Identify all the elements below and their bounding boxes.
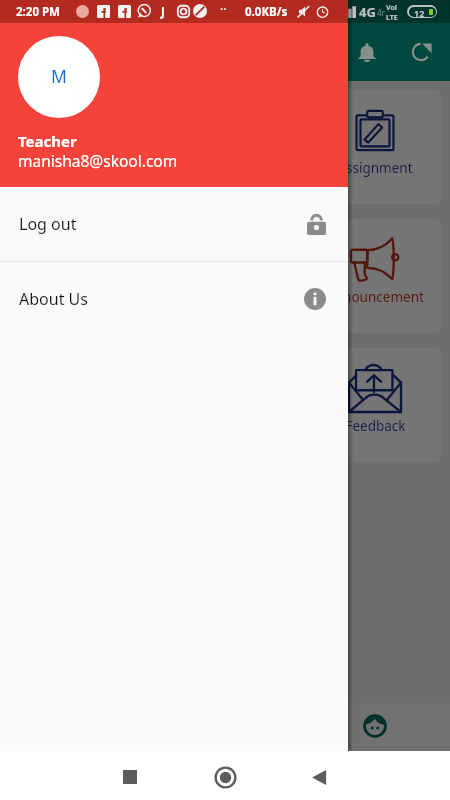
button[interactable]: Announcement bbox=[309, 219, 441, 333]
button[interactable]: Homework bbox=[159, 90, 291, 204]
button[interactable]: Attendance bbox=[9, 90, 141, 204]
button[interactable]: Log out bbox=[0, 187, 348, 261]
staticText: J bbox=[161, 4, 165, 20]
button[interactable]: Assignment bbox=[309, 90, 441, 204]
button[interactable]: Feedback bbox=[309, 348, 441, 462]
button[interactable]: Profile bbox=[363, 714, 387, 738]
staticText: 4G bbox=[359, 3, 376, 21]
staticText: Attendance bbox=[39, 159, 112, 177]
staticText: ·· bbox=[220, 1, 227, 17]
staticText: Teacher bbox=[18, 131, 77, 151]
button[interactable]: Back bbox=[294, 753, 342, 800]
button[interactable]: Time Table bbox=[9, 219, 141, 333]
staticText: 2:20 PM bbox=[16, 4, 60, 20]
staticText: 0.0KB/s bbox=[245, 4, 288, 20]
button[interactable]: Recents bbox=[106, 753, 154, 800]
button[interactable]: About Us bbox=[0, 262, 348, 336]
button[interactable]: Home bbox=[201, 753, 249, 800]
staticText: Time Table bbox=[41, 288, 110, 306]
staticText: Vol bbox=[386, 3, 397, 13]
staticText: M bbox=[51, 64, 67, 88]
staticText: Log out bbox=[19, 213, 77, 235]
button[interactable]: Refresh bbox=[398, 29, 446, 77]
button[interactable]: Notifications bbox=[343, 29, 391, 77]
staticText: About Us bbox=[19, 288, 88, 310]
staticText: Feedback bbox=[345, 417, 406, 435]
staticText: manisha8@skool.com bbox=[18, 150, 178, 171]
staticText: 4r bbox=[377, 7, 385, 18]
staticText: 12 bbox=[414, 7, 425, 18]
staticText: Announcement bbox=[326, 288, 424, 306]
staticText: LTE bbox=[386, 13, 398, 23]
staticText: Assignment bbox=[337, 159, 413, 177]
